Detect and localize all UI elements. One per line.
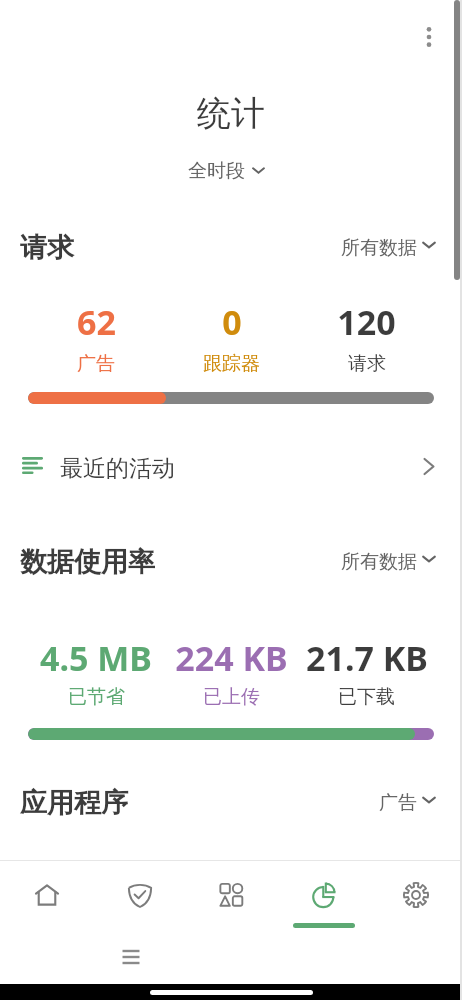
button[interactable]: Settings — [370, 861, 462, 923]
button[interactable]: Apps — [186, 861, 278, 923]
button[interactable]: More options — [407, 15, 451, 59]
staticText: 已下载 — [338, 685, 395, 709]
button[interactable]: 全时段 — [182, 155, 271, 185]
button[interactable]: Home — [0, 861, 93, 923]
button[interactable]: 所有数据 — [341, 230, 436, 266]
staticText: 已上传 — [203, 685, 260, 709]
staticText: 120 — [337, 299, 396, 345]
staticText: 4.5 MB — [40, 635, 152, 681]
button[interactable]: Menu — [113, 939, 149, 975]
staticText: 跟踪器 — [203, 352, 260, 376]
staticText: 最近的活动 — [60, 454, 175, 483]
staticText: 0 — [222, 299, 242, 345]
button[interactable]: 最近的活动 — [0, 439, 462, 497]
staticText: 所有数据 — [341, 550, 417, 574]
staticText: 广告 — [379, 791, 417, 815]
staticText: 全时段 — [188, 159, 245, 181]
staticText: 请求 — [20, 231, 74, 265]
button[interactable]: Statistics — [278, 861, 370, 923]
staticText: 21.7 KB — [306, 635, 428, 681]
staticText: 数据使用率 — [20, 545, 155, 579]
staticText: 统计 — [197, 92, 265, 135]
staticText: 224 KB — [175, 635, 288, 681]
staticText: 已节省 — [68, 685, 125, 709]
button[interactable]: 广告 — [379, 785, 436, 821]
button[interactable]: Protection — [93, 861, 186, 923]
button[interactable]: 所有数据 — [341, 544, 436, 580]
staticText: 广告 — [77, 352, 115, 376]
staticText: 请求 — [348, 352, 386, 376]
staticText: 62 — [77, 299, 116, 345]
staticText: 所有数据 — [341, 236, 417, 260]
staticText: 应用程序 — [20, 786, 128, 820]
